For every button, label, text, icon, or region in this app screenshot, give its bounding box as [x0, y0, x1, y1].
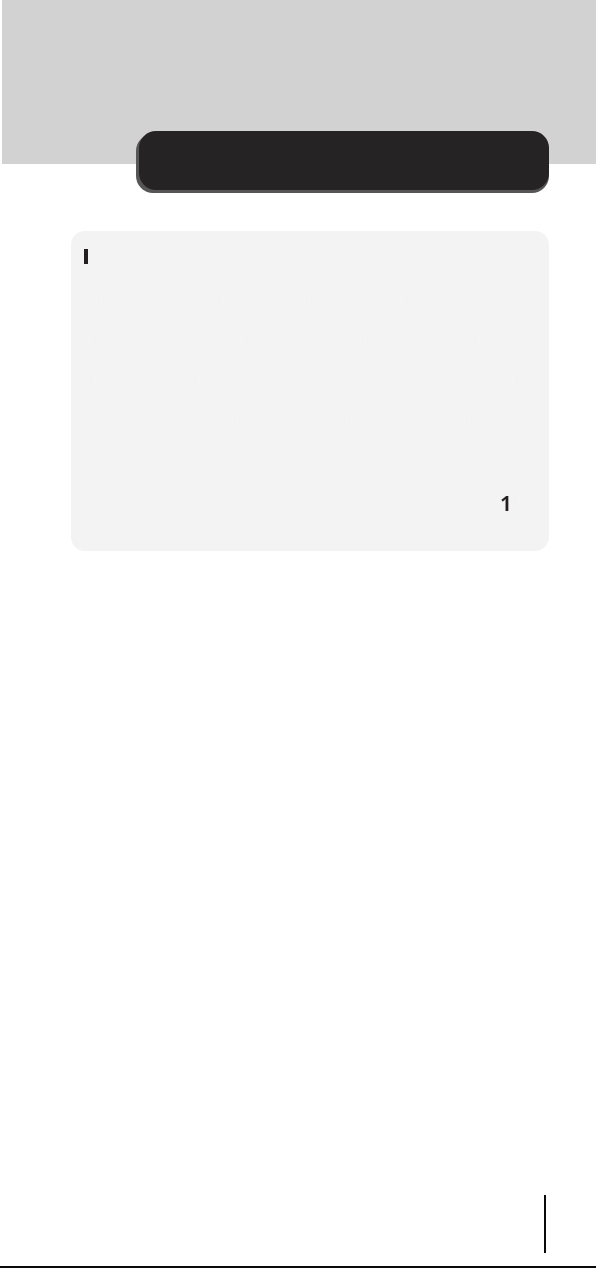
button[interactable]: Open item	[71, 231, 549, 551]
button[interactable]: Search	[139, 131, 549, 190]
staticText: 1	[500, 489, 512, 517]
